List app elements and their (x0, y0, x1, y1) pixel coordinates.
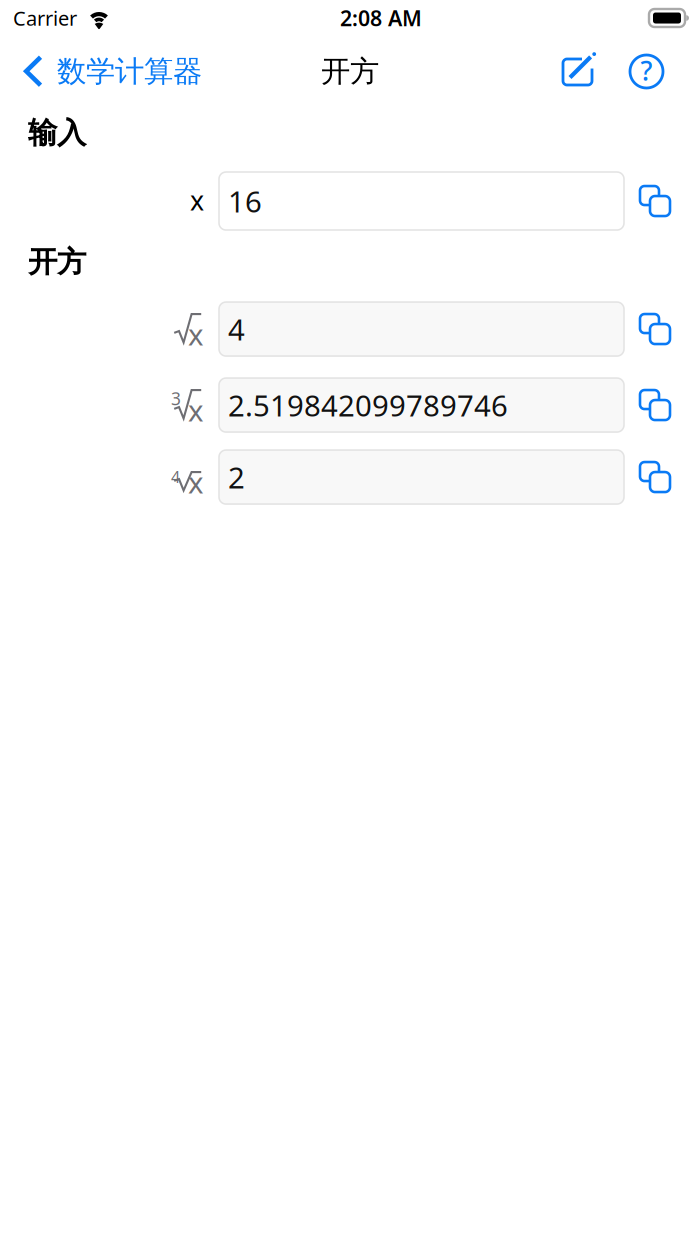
staticText: x (188, 315, 204, 354)
staticText: x (188, 391, 204, 430)
button[interactable]: Copy (624, 450, 684, 504)
staticText: 开方 (321, 53, 379, 89)
button[interactable]: 数学计算器 (0, 45, 202, 97)
staticText: x (188, 463, 204, 502)
staticText: 输入 (28, 115, 86, 151)
staticText: 3 (171, 387, 181, 410)
staticText: ? (640, 53, 652, 88)
staticText: 2.519842099789746 (228, 386, 508, 425)
button[interactable]: Copy (624, 172, 684, 230)
button[interactable]: Compose (561, 53, 597, 89)
staticText: 16 (228, 182, 262, 221)
staticText: x (190, 182, 204, 218)
staticText: 2:08 AM (340, 4, 422, 32)
button[interactable]: Copy (624, 302, 684, 356)
button[interactable]: Help (597, 54, 664, 89)
staticText: 数学计算器 (57, 53, 202, 89)
staticText: 开方 (28, 244, 86, 280)
button[interactable]: Copy (624, 378, 684, 432)
staticText: 4 (228, 310, 245, 349)
staticText: Carrier (13, 5, 77, 31)
staticText: 2 (228, 458, 245, 497)
staticText: 4 (171, 466, 180, 487)
